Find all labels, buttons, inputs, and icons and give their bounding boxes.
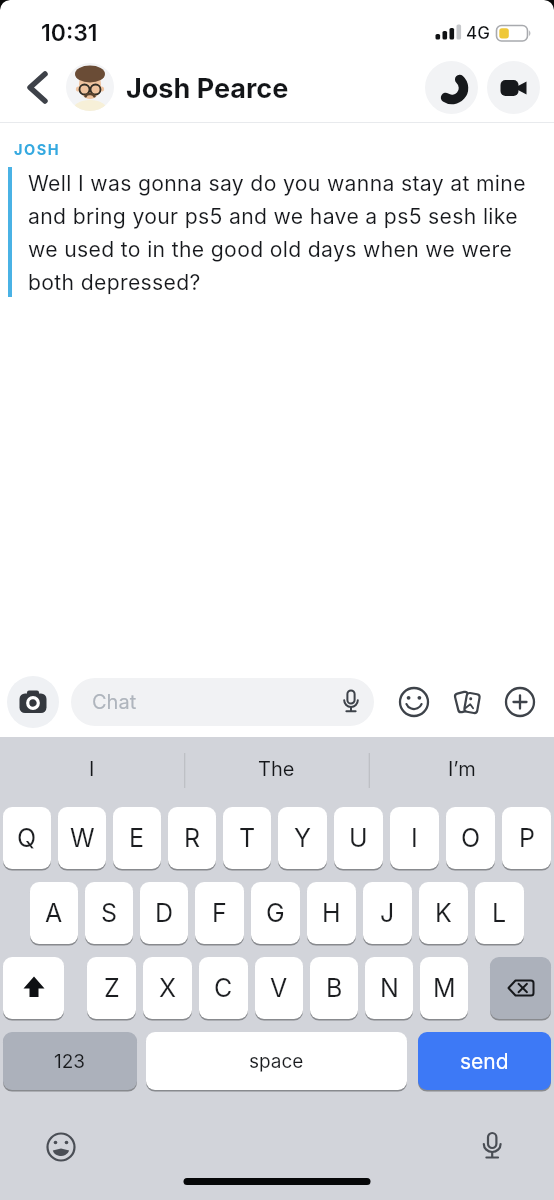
- staticText: M: [433, 973, 456, 1003]
- button[interactable]: K: [419, 882, 468, 944]
- staticText: B: [326, 973, 343, 1003]
- staticText: P: [519, 823, 535, 853]
- staticText: S: [101, 898, 118, 928]
- staticText: U: [349, 823, 368, 853]
- staticText: C: [214, 973, 233, 1003]
- button[interactable]: I’m: [369, 737, 554, 800]
- button[interactable]: [487, 61, 540, 114]
- button[interactable]: [503, 685, 537, 719]
- button[interactable]: space: [146, 1032, 407, 1090]
- staticText: V: [270, 973, 288, 1003]
- staticText: JOSH: [14, 141, 60, 159]
- staticText: F: [212, 898, 227, 928]
- staticText: send: [460, 1049, 509, 1074]
- button[interactable]: L: [475, 882, 524, 944]
- button[interactable]: W: [58, 807, 106, 869]
- button[interactable]: 123: [3, 1032, 137, 1090]
- staticText: I: [89, 757, 95, 781]
- button[interactable]: S: [85, 882, 133, 944]
- button[interactable]: O: [446, 807, 495, 869]
- button[interactable]: B: [310, 957, 358, 1019]
- staticText: A: [45, 898, 63, 928]
- button[interactable]: E: [113, 807, 161, 869]
- staticText: I’m: [448, 757, 476, 781]
- staticText: N: [380, 973, 399, 1003]
- staticText: Chat: [92, 690, 137, 714]
- button[interactable]: N: [365, 957, 413, 1019]
- staticText: T: [239, 823, 256, 853]
- staticText: E: [129, 823, 145, 853]
- staticText: R: [184, 823, 201, 853]
- staticText: Q: [17, 823, 37, 853]
- staticText: O: [461, 823, 481, 853]
- button[interactable]: G: [251, 882, 300, 944]
- staticText: G: [266, 898, 285, 928]
- staticText: J: [380, 898, 395, 928]
- button[interactable]: X: [143, 957, 192, 1019]
- button[interactable]: J: [363, 882, 412, 944]
- button[interactable]: U: [334, 807, 383, 869]
- staticText: D: [155, 898, 174, 928]
- button[interactable]: V: [255, 957, 303, 1019]
- button[interactable]: [397, 685, 431, 719]
- staticText: 4G: [466, 23, 490, 44]
- staticText: Well I was gonna say do you wanna stay a…: [28, 170, 526, 196]
- staticText: H: [322, 898, 341, 928]
- staticText: Z: [104, 973, 120, 1003]
- button[interactable]: [425, 61, 478, 114]
- staticText: L: [492, 898, 507, 928]
- button[interactable]: A: [30, 882, 78, 944]
- button[interactable]: [20, 63, 56, 111]
- staticText: and bring your ps5 and we have a ps5 ses…: [28, 203, 518, 229]
- button[interactable]: Z: [87, 957, 136, 1019]
- staticText: Y: [294, 823, 311, 853]
- button[interactable]: [66, 63, 114, 111]
- button[interactable]: [7, 676, 59, 728]
- staticText: X: [159, 973, 177, 1003]
- button[interactable]: C: [199, 957, 248, 1019]
- button[interactable]: send: [418, 1032, 551, 1090]
- button[interactable]: Q: [3, 807, 51, 869]
- button[interactable]: R: [168, 807, 216, 869]
- staticText: The: [258, 757, 295, 781]
- button[interactable]: The: [184, 737, 369, 800]
- button[interactable]: M: [420, 957, 468, 1019]
- button[interactable]: T: [223, 807, 271, 869]
- staticText: we used to in the good old days when we …: [28, 236, 513, 262]
- button[interactable]: [490, 957, 551, 1019]
- button[interactable]: Y: [278, 807, 327, 869]
- staticText: Josh Pearce: [126, 72, 289, 105]
- button[interactable]: [471, 1126, 513, 1168]
- button[interactable]: D: [140, 882, 188, 944]
- staticText: space: [249, 1050, 304, 1073]
- staticText: 10:31: [41, 19, 98, 47]
- staticText: both depressed?: [28, 269, 201, 295]
- staticText: I: [411, 823, 418, 853]
- button[interactable]: Chat: [71, 678, 374, 726]
- staticText: K: [435, 898, 452, 928]
- button[interactable]: [450, 685, 484, 719]
- button[interactable]: [3, 957, 64, 1019]
- button[interactable]: P: [502, 807, 551, 869]
- staticText: 123: [54, 1050, 86, 1073]
- staticText: W: [70, 823, 95, 853]
- button[interactable]: F: [195, 882, 244, 944]
- button[interactable]: I: [390, 807, 439, 869]
- button[interactable]: H: [307, 882, 356, 944]
- button[interactable]: [40, 1126, 82, 1168]
- button[interactable]: I: [0, 737, 184, 800]
